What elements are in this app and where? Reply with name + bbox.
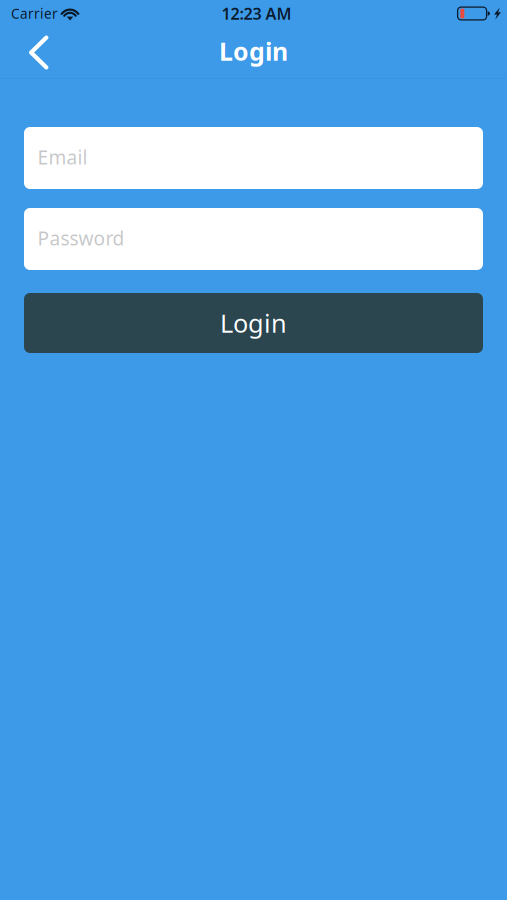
staticText: Login xyxy=(219,34,288,68)
staticText: Carrier xyxy=(11,4,58,23)
button[interactable]: Email xyxy=(24,127,483,189)
staticText: Password xyxy=(37,225,124,251)
button[interactable]: Password xyxy=(24,208,483,270)
staticText: 12:23 AM xyxy=(221,2,291,24)
button[interactable]: Login xyxy=(24,293,483,353)
staticText: Login xyxy=(220,306,287,340)
staticText: Email xyxy=(37,144,87,170)
button[interactable]: Back xyxy=(0,27,66,78)
